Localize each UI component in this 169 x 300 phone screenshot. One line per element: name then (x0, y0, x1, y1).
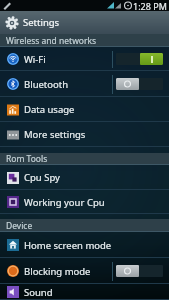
staticText: Wireless and networks (6, 35, 97, 47)
button[interactable]: Blocking mode (0, 258, 112, 284)
button[interactable]: Settings (0, 11, 169, 34)
button[interactable]: Wi-Fi (0, 47, 112, 71)
staticText: Device (6, 220, 33, 232)
button[interactable]: Blocking mode toggle (113, 258, 169, 284)
staticText: Wi-Fi (24, 53, 46, 66)
staticText: Data usage (24, 103, 75, 116)
button[interactable]: Data usage (0, 97, 169, 122)
staticText: Bluetooth (24, 78, 69, 91)
button[interactable]: Working your Cpu (0, 190, 169, 214)
button[interactable]: Sound (0, 284, 169, 300)
staticText: 1:28 PM (133, 0, 167, 11)
button[interactable]: Bluetooth toggle (113, 71, 169, 97)
staticText: Sound (24, 286, 53, 299)
staticText: Working your Cpu (24, 196, 105, 209)
staticText: Settings (23, 16, 60, 29)
button[interactable]: More settings (0, 122, 169, 147)
button[interactable]: Bluetooth (0, 71, 112, 97)
button[interactable]: Wi-Fi toggle (113, 47, 169, 71)
staticText: Home screen mode (24, 239, 112, 252)
button[interactable]: Home screen mode (0, 232, 169, 258)
staticText: Rom Tools (6, 153, 48, 165)
button[interactable]: Cpu Spy (0, 165, 169, 190)
staticText: Cpu Spy (24, 171, 60, 184)
staticText: Blocking mode (24, 265, 91, 278)
staticText: More settings (24, 128, 86, 141)
